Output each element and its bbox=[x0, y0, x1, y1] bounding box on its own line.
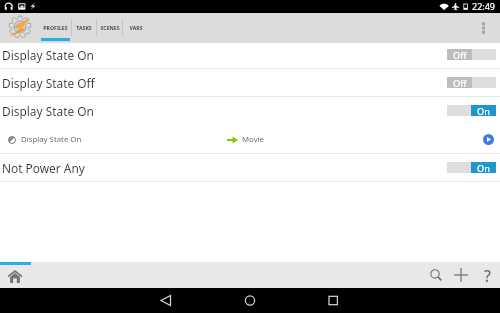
staticText: SCENES bbox=[100, 24, 120, 31]
staticText: VARS bbox=[129, 24, 143, 31]
button[interactable]: On bbox=[447, 105, 496, 116]
staticText: Display State On bbox=[21, 134, 82, 145]
button[interactable]: SCENES bbox=[97, 13, 122, 41]
button[interactable]: Not Power Any bbox=[0, 154, 500, 181]
staticText: TASKS bbox=[76, 24, 92, 31]
button[interactable]: Display State On bbox=[0, 125, 500, 153]
button[interactable]: Display State Off bbox=[0, 69, 500, 96]
staticText: PROFILES bbox=[43, 24, 68, 31]
button[interactable]: Search bbox=[424, 264, 448, 286]
staticText: Off bbox=[453, 49, 467, 60]
staticText: Display State On bbox=[2, 47, 94, 63]
staticText: On bbox=[477, 162, 490, 173]
staticText: Movie bbox=[242, 134, 265, 145]
staticText: Not Power Any bbox=[2, 160, 85, 176]
button[interactable]: Tasker bbox=[0, 13, 40, 41]
button[interactable]: VARS bbox=[123, 13, 149, 41]
button[interactable]: Help bbox=[474, 264, 500, 286]
staticText: Off bbox=[453, 77, 467, 88]
button[interactable]: Off bbox=[447, 49, 496, 60]
button[interactable]: Add bbox=[448, 264, 474, 286]
button[interactable]: Home bbox=[7, 269, 23, 284]
button[interactable]: Run task bbox=[483, 134, 494, 145]
button[interactable]: Off bbox=[447, 77, 496, 88]
button[interactable]: Display State On bbox=[0, 41, 500, 68]
staticText: ? bbox=[484, 265, 491, 286]
button[interactable]: On bbox=[447, 162, 496, 173]
staticText: Display State Off bbox=[2, 75, 95, 91]
staticText: Display State On bbox=[2, 103, 94, 119]
staticText: On bbox=[477, 105, 490, 116]
button[interactable]: PROFILES bbox=[40, 13, 71, 41]
button[interactable]: Display State On bbox=[0, 97, 500, 124]
staticText: 22:49 bbox=[472, 0, 496, 12]
button[interactable]: TASKS bbox=[72, 13, 96, 41]
button[interactable]: More options bbox=[467, 13, 500, 41]
